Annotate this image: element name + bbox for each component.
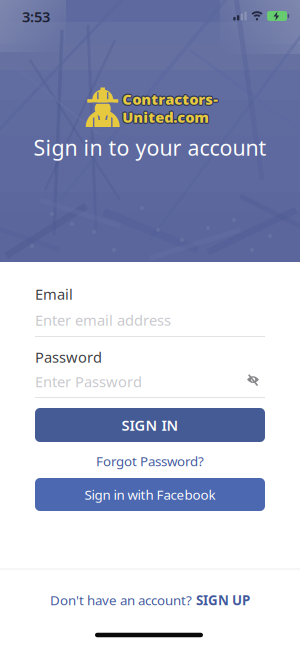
staticText: Sign in to your account	[33, 133, 266, 162]
staticText: United.com	[122, 106, 209, 126]
staticText: United.com	[121, 108, 208, 127]
button[interactable]: SIGN IN	[35, 408, 265, 442]
button[interactable]: Show password	[243, 372, 262, 387]
staticText: Contractors-	[122, 89, 218, 109]
staticText: Contractors-	[122, 88, 218, 108]
staticText: SIGN IN	[121, 415, 178, 435]
button[interactable]: Enter Password	[35, 369, 265, 393]
staticText: Contractors-	[123, 89, 219, 109]
staticText: United.com	[122, 108, 209, 128]
staticText: United.com	[121, 106, 208, 126]
staticText: United.com	[123, 106, 210, 126]
button[interactable]: Don't have an account?	[50, 591, 250, 609]
button[interactable]: Sign in with Facebook	[35, 478, 265, 511]
staticText: SIGN UP	[196, 591, 250, 609]
staticText: Forgot Password?	[96, 452, 204, 470]
staticText: 3:53	[22, 7, 50, 26]
button[interactable]: Enter email address	[35, 308, 265, 332]
staticText: United.com	[121, 107, 208, 127]
staticText: Enter email address	[35, 310, 171, 330]
staticText: United.com	[123, 108, 210, 127]
staticText: Sign in with Facebook	[84, 486, 215, 503]
staticText: Password	[35, 347, 102, 367]
staticText: Contractors-	[123, 90, 219, 110]
staticText: United.com	[123, 107, 210, 127]
staticText: Email	[35, 284, 73, 304]
staticText: Contractors-	[121, 89, 217, 109]
staticText: Enter Password	[35, 372, 142, 391]
staticText: Contractors-	[121, 90, 217, 110]
staticText: Contractors-	[121, 88, 217, 108]
button[interactable]: Forgot Password?	[96, 452, 204, 470]
staticText: United.com	[122, 107, 209, 127]
staticText: Don't have an account?	[50, 591, 192, 609]
staticText: Contractors-	[122, 90, 218, 110]
staticText: Contractors-	[123, 88, 219, 108]
